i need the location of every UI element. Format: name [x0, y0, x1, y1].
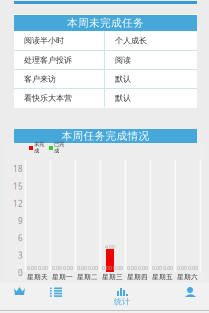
staticText: 默认 — [115, 74, 131, 84]
staticText: 0.00 — [38, 264, 48, 272]
staticText: 0.00 — [88, 264, 98, 272]
button[interactable]: 统计 — [0, 283, 209, 313]
staticText: 客户来访 — [24, 74, 56, 84]
staticText: 统计 — [114, 297, 130, 306]
staticText: 星期二 — [77, 273, 98, 281]
staticText: 默认 — [115, 93, 131, 103]
staticText: 阅读半小时 — [24, 36, 64, 45]
staticText: 星期一 — [52, 273, 73, 281]
staticText: 已完成 — [54, 141, 64, 154]
staticText: 18 — [13, 164, 23, 174]
staticText: 0.00 — [188, 264, 198, 272]
staticText: 0.00 — [63, 264, 73, 272]
staticText: 0.00 — [27, 264, 37, 272]
button[interactable]: 客户来访 — [14, 70, 197, 88]
staticText: 0.00 — [163, 264, 173, 272]
button[interactable]: 阅读半小时 — [14, 31, 197, 50]
staticText: 15 — [13, 181, 23, 192]
button[interactable]: 列表 — [0, 283, 209, 313]
staticText: 未完成 — [34, 141, 44, 154]
staticText: 星期四 — [127, 273, 148, 281]
staticText: 3 — [18, 250, 23, 261]
staticText: 星期六 — [177, 273, 198, 281]
button[interactable]: 看快乐大本营 — [14, 89, 197, 107]
staticText: 看快乐大本营 — [24, 93, 72, 103]
staticText: 星期三 — [102, 273, 123, 281]
staticText: 0.00 — [113, 264, 123, 272]
button[interactable]: 任务 — [0, 283, 209, 313]
staticText: 星期五 — [152, 273, 173, 281]
staticText: 12 — [13, 198, 23, 209]
staticText: 星期天 — [27, 273, 48, 281]
staticText: 0.00 — [102, 264, 112, 272]
staticText: 4.00 — [105, 243, 115, 251]
button[interactable]: 处理客户投诉 — [14, 51, 197, 69]
staticText: 0.00 — [138, 264, 148, 272]
staticText: 处理客户投诉 — [24, 55, 72, 65]
staticText: 0 — [18, 267, 23, 278]
staticText: 个人成长 — [115, 36, 147, 45]
staticText: 0.00 — [52, 264, 62, 272]
button[interactable]: 我的 — [0, 283, 209, 313]
staticText: 6 — [18, 233, 23, 243]
staticText: 本周任务完成情况 — [61, 129, 149, 142]
staticText: 0.00 — [177, 264, 187, 272]
staticText: 0.00 — [152, 264, 162, 272]
staticText: 0.00 — [77, 264, 87, 272]
staticText: 9 — [18, 216, 23, 226]
staticText: 0.00 — [127, 264, 137, 272]
staticText: 阅读 — [115, 55, 131, 65]
staticText: 本周未完成任务 — [67, 16, 144, 29]
